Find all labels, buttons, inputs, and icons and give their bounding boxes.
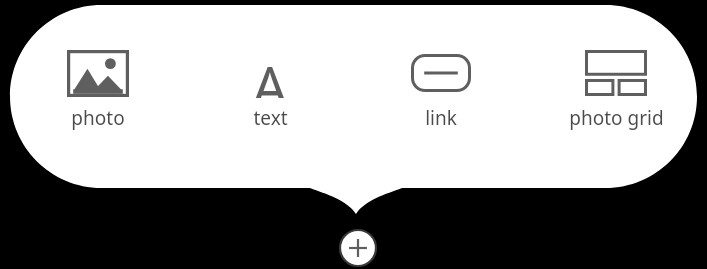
- staticText: link: [425, 105, 457, 131]
- staticText: photo grid: [569, 105, 664, 131]
- button[interactable]: A: [195, 48, 345, 148]
- staticText: A: [252, 48, 288, 98]
- staticText: text: [253, 105, 288, 131]
- button[interactable]: Add: [338, 228, 378, 268]
- staticText: photo: [71, 105, 125, 131]
- button[interactable]: photo grid: [541, 48, 691, 148]
- button[interactable]: photo: [23, 48, 173, 148]
- button[interactable]: link: [366, 48, 516, 148]
